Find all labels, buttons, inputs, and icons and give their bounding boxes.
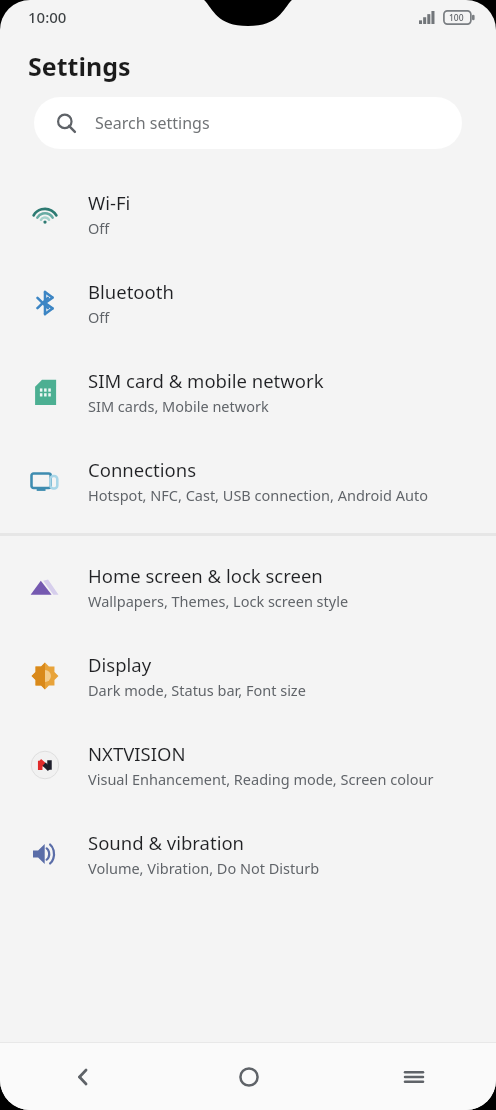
staticText: Volume, Vibration, Do Not Disturb — [88, 858, 320, 878]
staticText: Connections — [88, 457, 197, 482]
button[interactable]: Back — [0, 1043, 166, 1110]
button[interactable]: Connections — [0, 436, 496, 525]
staticText: Dark mode, Status bar, Font size — [88, 680, 306, 700]
staticText: Bluetooth — [88, 279, 174, 304]
staticText: Sound & vibration — [88, 830, 245, 855]
button[interactable]: SIM card & mobile network — [0, 347, 496, 436]
staticText: Display — [88, 652, 152, 677]
staticText: SIM cards, Mobile network — [88, 396, 269, 416]
staticText: Settings — [28, 49, 131, 83]
button[interactable]: Sound & vibration — [0, 809, 496, 898]
button[interactable]: Bluetooth — [0, 258, 496, 347]
staticText: SIM card & mobile network — [88, 368, 324, 393]
staticText: Off — [88, 218, 110, 238]
staticText: Search settings — [95, 112, 210, 134]
staticText: Wi-Fi — [88, 190, 131, 215]
button[interactable]: Recent apps — [331, 1043, 496, 1110]
button[interactable]: Wi-Fi — [0, 169, 496, 258]
staticText: Off — [88, 307, 110, 327]
button[interactable]: Display — [0, 631, 496, 720]
staticText: 10:00 — [28, 7, 67, 27]
staticText: Visual Enhancement, Reading mode, Screen… — [88, 769, 434, 789]
button[interactable]: NXTVISION — [0, 720, 496, 809]
staticText: NXTVISION — [88, 741, 186, 766]
staticText: Wallpapers, Themes, Lock screen style — [88, 591, 349, 611]
button[interactable]: Home — [166, 1043, 331, 1110]
staticText: Hotspot, NFC, Cast, USB connection, Andr… — [88, 485, 428, 505]
button[interactable]: Home screen & lock screen — [0, 542, 496, 631]
staticText: 100 — [449, 12, 464, 24]
button[interactable]: Search settings — [34, 97, 462, 149]
staticText: Home screen & lock screen — [88, 563, 323, 588]
